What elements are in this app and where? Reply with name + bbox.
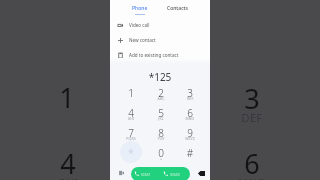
staticText: 3 bbox=[176, 86, 204, 100]
button[interactable]: Video call bbox=[110, 20, 210, 30]
staticText: Phone bbox=[132, 5, 148, 12]
staticText: MNO bbox=[176, 116, 204, 121]
staticText: + bbox=[147, 156, 175, 161]
staticText: *125 bbox=[110, 70, 210, 84]
staticText: GHI bbox=[117, 116, 145, 121]
staticText: Video call bbox=[129, 22, 150, 28]
staticText: DEF bbox=[222, 110, 282, 125]
staticText: 1 bbox=[117, 86, 145, 100]
staticText: Add to existing contact bbox=[129, 52, 179, 58]
staticText: 6 bbox=[176, 106, 204, 120]
staticText: 3 bbox=[222, 80, 282, 117]
button[interactable]: Video call bbox=[118, 170, 124, 176]
button[interactable]: 9 bbox=[176, 125, 204, 145]
button[interactable]: 2 bbox=[147, 85, 175, 105]
staticText: 0 bbox=[147, 146, 175, 160]
button[interactable]: 3 bbox=[176, 85, 204, 105]
button[interactable]: Contacts bbox=[159, 5, 195, 12]
button[interactable]: 4 bbox=[117, 105, 145, 125]
staticText: SIM2 bbox=[170, 172, 180, 178]
staticText: JKL bbox=[147, 116, 175, 121]
staticText: 9 bbox=[176, 126, 204, 140]
staticText: 6 bbox=[222, 145, 282, 180]
staticText: 7 bbox=[117, 126, 145, 140]
button[interactable]: 8 bbox=[147, 125, 175, 145]
staticText: 2 bbox=[147, 86, 175, 100]
staticText: TUV bbox=[147, 136, 175, 141]
button[interactable]: Phone bbox=[122, 5, 158, 15]
staticText: * bbox=[117, 146, 145, 160]
staticText: ABC bbox=[147, 96, 175, 101]
button[interactable]: Backspace bbox=[197, 169, 206, 178]
button[interactable]: * bbox=[117, 145, 145, 165]
button[interactable]: 7 bbox=[117, 125, 145, 145]
staticText: # bbox=[176, 146, 204, 160]
button[interactable]: 1 bbox=[117, 85, 145, 105]
staticText: 5 bbox=[147, 106, 175, 120]
staticText: SIM1 bbox=[141, 172, 151, 178]
button[interactable]: New contact bbox=[110, 35, 210, 45]
staticText: PQRS bbox=[117, 136, 145, 141]
staticText: 4 bbox=[38, 145, 98, 180]
button[interactable]: # bbox=[176, 145, 204, 165]
button[interactable]: 6 bbox=[176, 105, 204, 125]
staticText: DEF bbox=[176, 96, 204, 101]
staticText: 8 bbox=[147, 126, 175, 140]
button[interactable]: Add to existing contact bbox=[110, 50, 210, 60]
staticText: 1 bbox=[37, 79, 97, 116]
staticText: WXYZ bbox=[176, 136, 204, 141]
button[interactable]: SIM2 bbox=[161, 167, 190, 180]
staticText: 4 bbox=[117, 106, 145, 120]
button[interactable]: SIM1 bbox=[132, 167, 162, 180]
staticText: New contact bbox=[129, 37, 156, 43]
staticText: Contacts bbox=[167, 5, 188, 12]
button[interactable]: 0 bbox=[147, 145, 175, 165]
button[interactable]: 5 bbox=[147, 105, 175, 125]
